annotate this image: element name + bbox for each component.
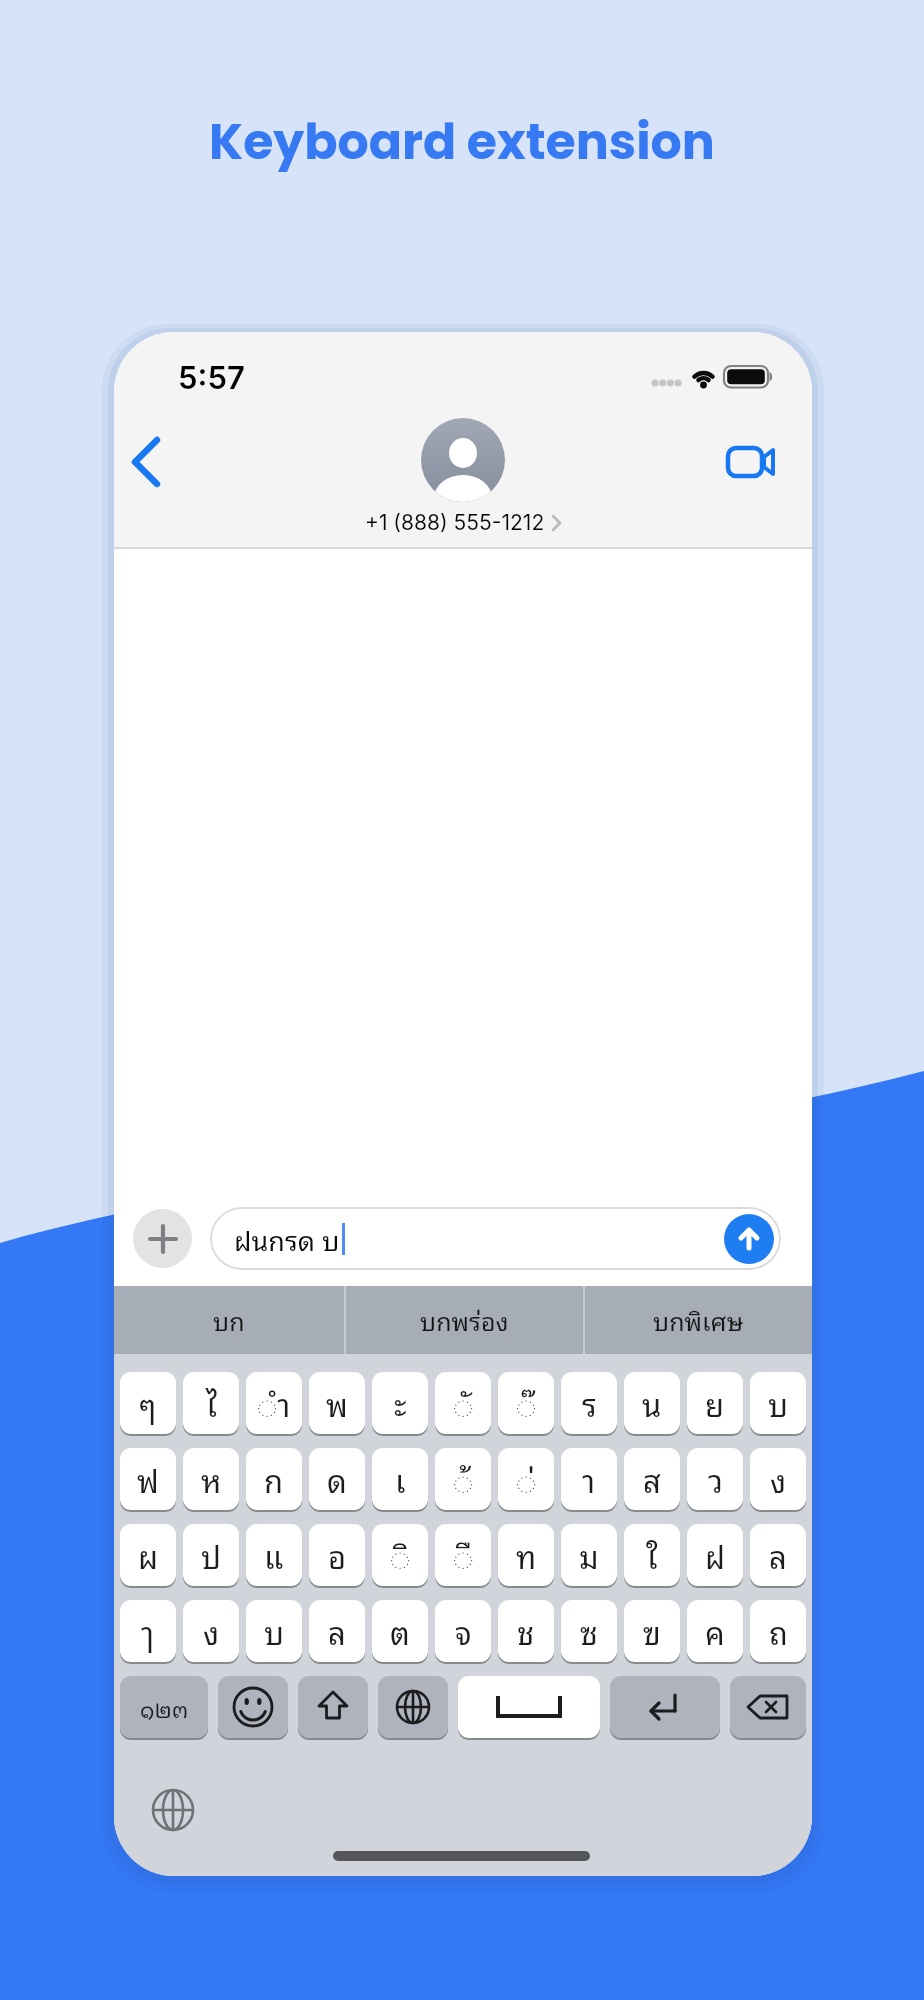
- button[interactable]: ๑๒๓: [120, 1676, 208, 1738]
- staticText: ค: [705, 1606, 725, 1656]
- staticText: ◌ำ: [257, 1378, 291, 1428]
- staticText: ส: [643, 1454, 661, 1504]
- staticText: ๅ: [141, 1606, 155, 1656]
- staticText: ฝ: [705, 1530, 726, 1580]
- staticText: ฃ: [643, 1606, 661, 1656]
- button[interactable]: ◌ำ: [246, 1372, 302, 1434]
- button[interactable]: ย: [687, 1372, 743, 1434]
- button[interactable]: ใ: [624, 1524, 680, 1586]
- staticText: า: [582, 1454, 596, 1504]
- staticText: ◌่: [516, 1454, 537, 1504]
- button[interactable]: า: [561, 1448, 617, 1510]
- staticText: Keyboard extension: [209, 108, 715, 177]
- button[interactable]: ๅ: [120, 1600, 176, 1662]
- staticText: ว: [708, 1454, 723, 1504]
- button[interactable]: พ: [309, 1372, 365, 1434]
- button[interactable]: ะ: [372, 1372, 428, 1434]
- button[interactable]: ฟ: [120, 1448, 176, 1510]
- button[interactable]: [122, 432, 172, 492]
- button[interactable]: ป: [183, 1524, 239, 1586]
- button[interactable]: ๆ: [120, 1372, 176, 1434]
- staticText: จ: [455, 1606, 472, 1656]
- button[interactable]: ล: [750, 1524, 806, 1586]
- button[interactable]: ฝ: [687, 1524, 743, 1586]
- button[interactable]: บกพิเศษ: [584, 1286, 812, 1354]
- button[interactable]: [133, 1209, 192, 1268]
- staticText: ไ: [206, 1378, 217, 1428]
- button[interactable]: ท: [498, 1524, 554, 1586]
- button[interactable]: แ: [246, 1524, 302, 1586]
- staticText: ย: [705, 1378, 725, 1428]
- staticText: อ: [328, 1530, 347, 1580]
- button[interactable]: [151, 1788, 195, 1832]
- button[interactable]: ไ: [183, 1372, 239, 1434]
- staticText: พ: [326, 1378, 348, 1428]
- button[interactable]: บก: [114, 1286, 344, 1354]
- button[interactable]: ◌ิ: [372, 1524, 428, 1586]
- staticText: ล: [328, 1606, 346, 1656]
- button[interactable]: ◌่: [498, 1448, 554, 1510]
- button[interactable]: ส: [624, 1448, 680, 1510]
- staticText: ต: [390, 1606, 410, 1656]
- button[interactable]: บ: [750, 1372, 806, 1434]
- button[interactable]: เ: [372, 1448, 428, 1510]
- button[interactable]: ง: [750, 1448, 806, 1510]
- button[interactable]: ห: [183, 1448, 239, 1510]
- button[interactable]: +1 (888) 555-1212: [114, 508, 812, 536]
- staticText: น: [642, 1378, 662, 1428]
- button[interactable]: ฝนกรด บ: [210, 1207, 781, 1270]
- button[interactable]: ง: [183, 1600, 239, 1662]
- staticText: ◌้: [453, 1454, 474, 1504]
- button[interactable]: ว: [687, 1448, 743, 1510]
- button[interactable]: ช: [498, 1600, 554, 1662]
- button[interactable]: [724, 1214, 774, 1264]
- button[interactable]: ก: [246, 1448, 302, 1510]
- staticText: ◌ิ: [390, 1530, 411, 1580]
- staticText: ม: [579, 1530, 599, 1580]
- button[interactable]: ค: [687, 1600, 743, 1662]
- staticText: ง: [770, 1454, 787, 1504]
- staticText: 5:57: [178, 359, 245, 397]
- staticText: ซ: [580, 1606, 598, 1656]
- button[interactable]: [218, 1676, 288, 1738]
- button[interactable]: [610, 1676, 720, 1738]
- staticText: ง: [203, 1606, 220, 1656]
- staticText: ห: [201, 1454, 222, 1504]
- staticText: ผ: [138, 1530, 159, 1580]
- button[interactable]: ม: [561, 1524, 617, 1586]
- button[interactable]: อ: [309, 1524, 365, 1586]
- button[interactable]: ◌ื: [435, 1524, 491, 1586]
- button[interactable]: ◌้: [435, 1448, 491, 1510]
- staticText: เ: [395, 1454, 406, 1504]
- staticText: ะ: [394, 1378, 407, 1428]
- staticText: ◌ื: [453, 1530, 474, 1580]
- button[interactable]: [730, 1676, 806, 1738]
- staticText: ใ: [646, 1530, 658, 1580]
- staticText: ก: [264, 1454, 284, 1504]
- button[interactable]: [298, 1676, 368, 1738]
- button[interactable]: ◌ั: [435, 1372, 491, 1434]
- button[interactable]: [716, 437, 796, 487]
- staticText: ๆ: [139, 1378, 157, 1428]
- staticText: บ: [264, 1606, 285, 1656]
- button[interactable]: ฃ: [624, 1600, 680, 1662]
- button[interactable]: ร: [561, 1372, 617, 1434]
- button[interactable]: ด: [309, 1448, 365, 1510]
- staticText: ฝนกรด บ: [234, 1217, 340, 1260]
- button[interactable]: [458, 1676, 600, 1738]
- button[interactable]: ซ: [561, 1600, 617, 1662]
- staticText: ท: [516, 1530, 537, 1580]
- button[interactable]: ผ: [120, 1524, 176, 1586]
- button[interactable]: บกพร่อง: [345, 1286, 583, 1354]
- button[interactable]: จ: [435, 1600, 491, 1662]
- button[interactable]: ล: [309, 1600, 365, 1662]
- button[interactable]: น: [624, 1372, 680, 1434]
- staticText: บกพิเศษ: [653, 1300, 744, 1340]
- button[interactable]: ◌๊: [498, 1372, 554, 1434]
- button[interactable]: [378, 1676, 448, 1738]
- button[interactable]: ถ: [750, 1600, 806, 1662]
- staticText: +1 (888) 555-1212: [365, 510, 545, 535]
- staticText: ถ: [769, 1606, 788, 1656]
- button[interactable]: ต: [372, 1600, 428, 1662]
- button[interactable]: บ: [246, 1600, 302, 1662]
